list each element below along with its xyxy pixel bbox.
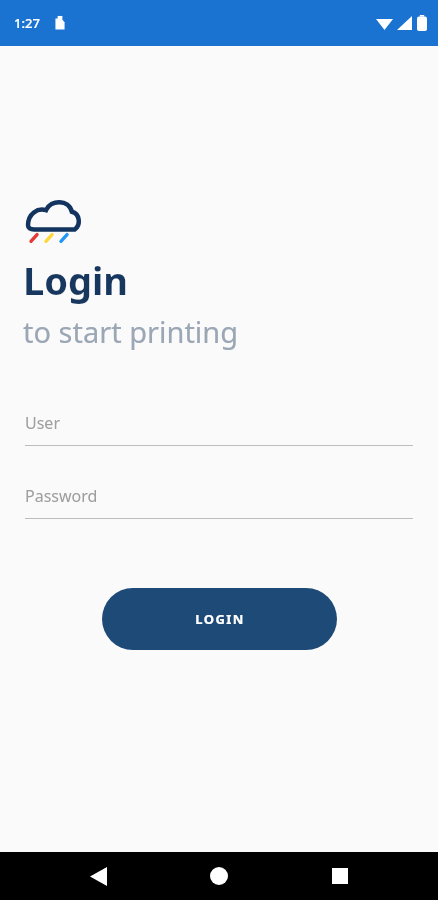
staticText: User [25,412,60,434]
button[interactable]: Recent apps [320,856,360,896]
button[interactable]: LOGIN [102,588,337,650]
button[interactable]: User [25,412,413,446]
staticText: Password [25,485,98,507]
button[interactable]: Back [78,856,118,896]
staticText: to start printing [23,312,239,351]
staticText: LOGIN [195,610,245,628]
staticText: Login [23,254,129,306]
button[interactable]: Password [25,485,413,519]
staticText: 1:27 [14,14,40,32]
button[interactable]: Home [199,856,239,896]
